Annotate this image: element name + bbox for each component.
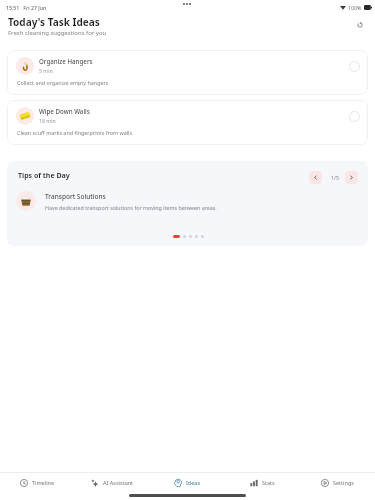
staticText: 5 min bbox=[39, 67, 53, 74]
staticText: Stats bbox=[262, 479, 275, 486]
staticText: Wipe Down Walls bbox=[39, 107, 90, 115]
staticText: 100% bbox=[348, 4, 362, 11]
staticText: Today's Task Ideas bbox=[8, 15, 100, 29]
staticText: Transport Solutions bbox=[45, 192, 106, 201]
button[interactable]: Next tip bbox=[345, 171, 358, 184]
staticText: Settings bbox=[333, 479, 354, 486]
staticText: Collect and organize empty hangers bbox=[17, 79, 109, 86]
button[interactable]: Mark task complete bbox=[346, 58, 362, 74]
button[interactable]: Wipe Down Walls bbox=[7, 100, 368, 145]
button[interactable]: AI Assistant bbox=[75, 474, 150, 491]
staticText: 15:51 Fri 27 Jun bbox=[6, 4, 47, 11]
button[interactable]: Organize Hangers bbox=[7, 50, 368, 95]
staticText: Organize Hangers bbox=[39, 57, 93, 65]
button[interactable]: Timeline bbox=[0, 474, 75, 491]
button[interactable]: Previous tip bbox=[309, 171, 322, 184]
staticText: Timeline bbox=[32, 479, 55, 486]
staticText: Have dedicated transport solutions for m… bbox=[45, 204, 217, 211]
button[interactable]: Mark task complete bbox=[346, 108, 362, 124]
staticText: 1/5 bbox=[325, 174, 345, 181]
staticText: Ideas bbox=[186, 479, 201, 486]
button[interactable]: Settings bbox=[300, 474, 375, 491]
button[interactable]: Ideas bbox=[150, 474, 225, 491]
staticText: AI Assistant bbox=[103, 479, 134, 486]
staticText: Clean scuff marks and fingerprints from … bbox=[17, 129, 133, 136]
staticText: Fresh cleaning suggestions for you bbox=[8, 29, 107, 37]
button[interactable]: Refresh bbox=[350, 15, 370, 35]
staticText: 18 min bbox=[39, 117, 56, 124]
staticText: Tips of the Day bbox=[18, 171, 70, 181]
button[interactable]: Stats bbox=[225, 474, 300, 491]
